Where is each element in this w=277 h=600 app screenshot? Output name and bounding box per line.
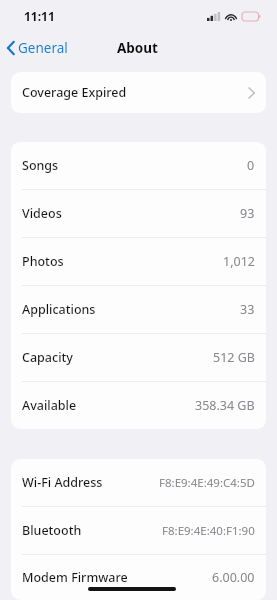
staticText: 0 xyxy=(247,157,255,174)
button[interactable]: Bluetooth xyxy=(11,507,266,554)
staticText: 93 xyxy=(240,205,255,222)
staticText: Coverage Expired xyxy=(22,84,127,101)
button[interactable]: Videos xyxy=(11,190,266,237)
staticText: F8:E9:4E:40:F1:90 xyxy=(162,523,255,539)
button[interactable]: Modem Firmware xyxy=(11,555,266,600)
staticText: 1,012 xyxy=(223,253,255,270)
button[interactable]: Applications xyxy=(11,286,266,333)
staticText: Capacity xyxy=(22,349,73,366)
staticText: About xyxy=(117,39,158,57)
button[interactable]: Photos xyxy=(11,238,266,285)
staticText: 11:11 xyxy=(24,8,55,24)
button[interactable]: Available xyxy=(11,382,266,429)
staticText: Photos xyxy=(22,253,64,270)
staticText: 33 xyxy=(240,301,255,318)
staticText: Modem Firmware xyxy=(22,569,128,586)
button[interactable]: Capacity xyxy=(11,334,266,381)
staticText: 358.34 GB xyxy=(195,397,255,414)
staticText: Applications xyxy=(22,301,96,318)
other: Open coverage details xyxy=(248,87,255,99)
button[interactable]: Songs xyxy=(11,142,266,189)
staticText: 6.00.00 xyxy=(212,569,255,586)
staticText: Songs xyxy=(22,157,59,174)
staticText: Videos xyxy=(22,205,62,222)
staticText: Wi-Fi Address xyxy=(22,474,103,491)
staticText: F8:E9:4E:49:C4:5D xyxy=(159,475,255,491)
button[interactable]: Wi-Fi Address xyxy=(11,459,266,506)
staticText: Bluetooth xyxy=(22,522,82,539)
button[interactable]: Coverage Expired xyxy=(11,72,266,113)
staticText: General xyxy=(18,39,68,57)
button[interactable]: General xyxy=(0,35,76,61)
staticText: Available xyxy=(22,397,77,414)
staticText: 512 GB xyxy=(213,349,255,366)
